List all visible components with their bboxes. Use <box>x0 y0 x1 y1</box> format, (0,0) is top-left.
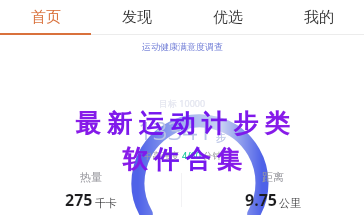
staticText: 分钟 <box>201 149 222 161</box>
button[interactable]: 优选 <box>182 0 273 35</box>
staticText: 发现 <box>122 8 152 27</box>
staticText: 最 新 运 动 计 步 类 <box>75 105 290 139</box>
staticText: 9.75 <box>245 189 277 211</box>
staticText: 首页 <box>31 8 61 27</box>
button[interactable]: 首页 <box>0 0 91 35</box>
button[interactable]: 热量 <box>0 165 181 215</box>
staticText: 优选 <box>213 8 243 27</box>
button[interactable]: 我的 <box>273 0 364 35</box>
staticText: 运动健康满意度调查 <box>142 41 223 52</box>
staticText: 我的 <box>304 8 334 27</box>
staticText: 275 <box>65 189 93 211</box>
staticText: 步 <box>216 131 226 144</box>
button[interactable]: 发现 <box>91 0 182 35</box>
staticText: 4/60 <box>182 149 201 161</box>
staticText: 目标 10000 <box>159 97 206 109</box>
staticText: 13341 <box>138 112 213 147</box>
staticText: 软 件 合 集 <box>122 141 242 175</box>
staticText: 距离 <box>262 170 284 184</box>
staticText: 公里 <box>279 196 301 210</box>
staticText: 千卡 <box>95 196 117 210</box>
button[interactable]: 距离 <box>182 165 364 215</box>
staticText: 热量 <box>80 170 102 184</box>
staticText: 中高强度 <box>143 149 182 161</box>
